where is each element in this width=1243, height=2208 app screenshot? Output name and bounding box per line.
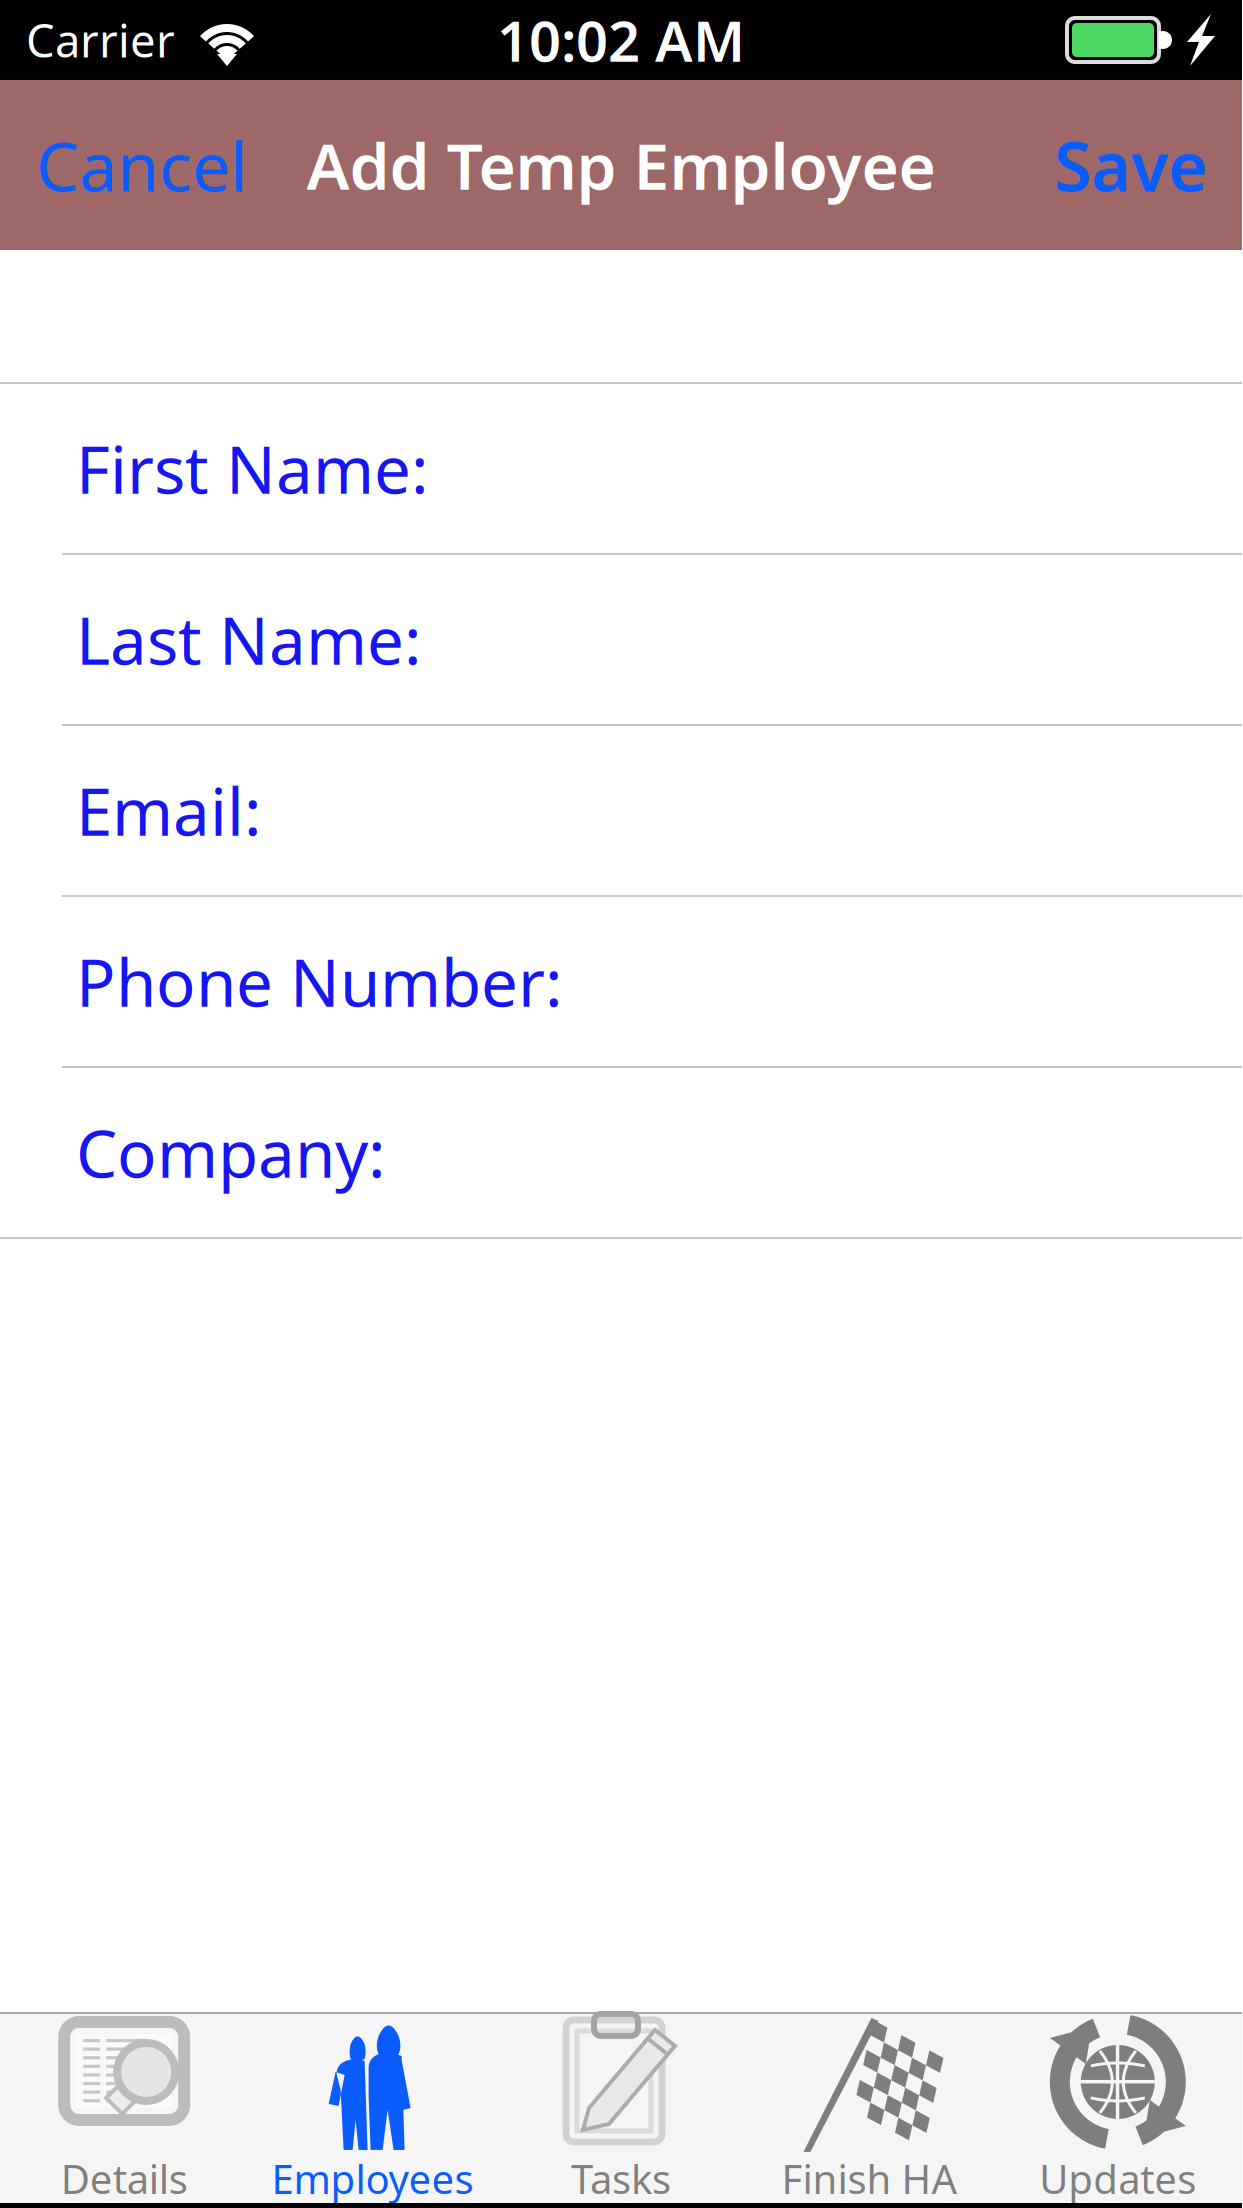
button[interactable]: Finish HA	[745, 2014, 994, 2203]
button[interactable]: Tasks	[497, 2014, 745, 2203]
staticText: First Name:	[76, 425, 429, 512]
button[interactable]: Updates	[994, 2014, 1242, 2203]
staticText: Tasks	[571, 2152, 671, 2205]
staticText: 10:02 AM	[497, 3, 745, 77]
staticText: Updates	[1039, 2152, 1196, 2205]
staticText: Finish HA	[781, 2152, 957, 2205]
button[interactable]: Company:	[0, 1068, 1242, 1239]
staticText: Phone Number:	[76, 938, 563, 1025]
staticText: Company:	[76, 1109, 386, 1196]
button[interactable]: Details	[0, 2014, 248, 2203]
staticText: Add Temp Employee	[306, 122, 935, 207]
staticText: Cancel	[36, 120, 248, 210]
staticText: Details	[61, 2152, 188, 2205]
button[interactable]: Email:	[0, 726, 1242, 897]
staticText: Save	[1054, 120, 1208, 210]
staticText: Email:	[76, 767, 262, 854]
staticText: Carrier	[26, 10, 175, 70]
button[interactable]: First Name:	[0, 384, 1242, 555]
staticText: Last Name:	[76, 596, 422, 683]
staticText: Employees	[272, 2152, 474, 2205]
button[interactable]: Cancel	[0, 80, 280, 250]
button[interactable]: Save	[1002, 80, 1242, 250]
button[interactable]: Employees	[248, 2014, 497, 2203]
button[interactable]: Phone Number:	[0, 897, 1242, 1068]
button[interactable]: Last Name:	[0, 555, 1242, 726]
